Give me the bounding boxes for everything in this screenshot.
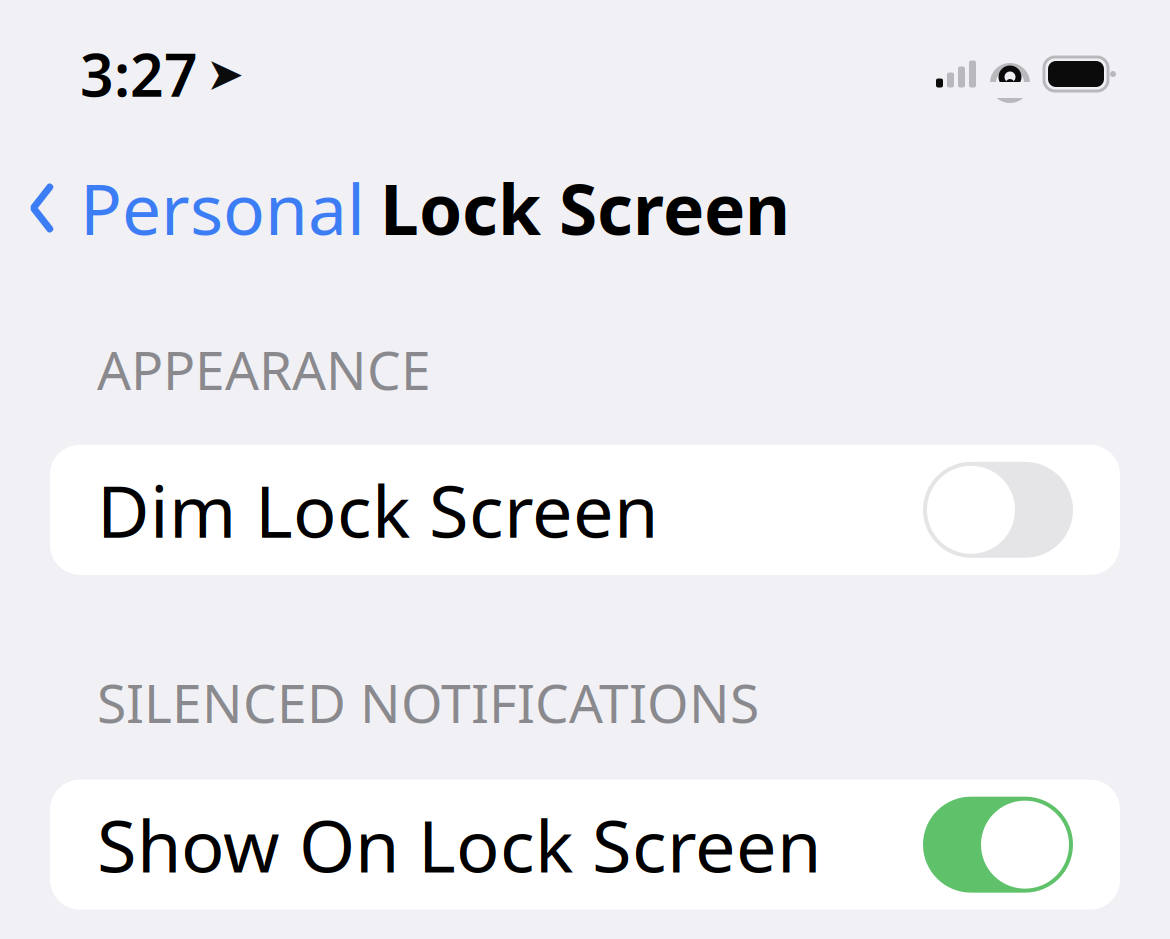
button[interactable]: Dim Lock Screen — [50, 445, 1120, 575]
staticText: APPEARANCE — [97, 334, 431, 405]
button[interactable]: Personal — [0, 152, 365, 264]
staticText: Personal — [80, 162, 365, 254]
button[interactable]: Show On Lock Screen — [50, 780, 1120, 910]
staticText: Lock Screen — [380, 162, 790, 254]
staticText: Dim Lock Screen — [97, 462, 658, 558]
staticText: ➤ — [206, 48, 244, 100]
staticText: Show On Lock Screen — [97, 797, 821, 892]
staticText: 3:27 — [80, 35, 198, 113]
staticText: SILENCED NOTIFICATIONS — [97, 667, 759, 738]
